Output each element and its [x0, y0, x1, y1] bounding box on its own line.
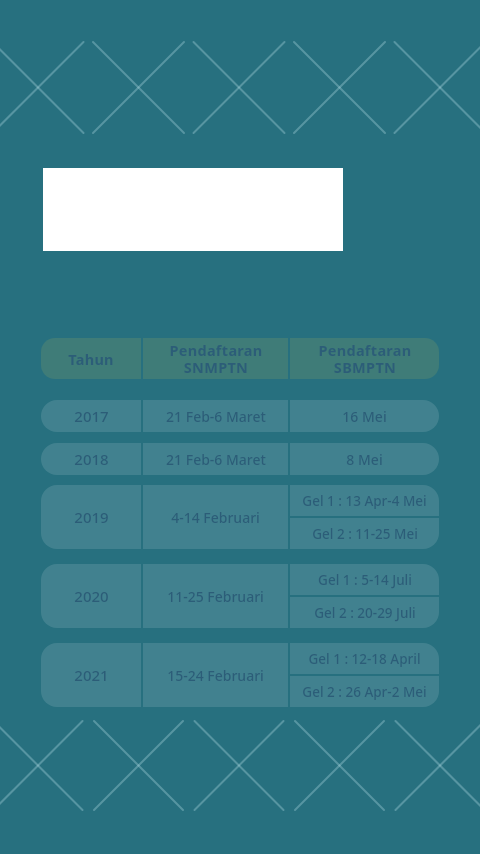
staticText: Gel 2 : 11-25 Mei	[312, 525, 418, 543]
button[interactable]: 2021	[41, 643, 439, 707]
staticText: 2019	[74, 507, 109, 527]
button[interactable]: Tahun	[41, 338, 141, 379]
staticText: 16 Mei	[342, 407, 387, 426]
staticText: 2020	[74, 586, 109, 606]
staticText: 2021	[74, 665, 109, 685]
button[interactable]: Pendaftaran SBMPTN	[290, 338, 439, 379]
staticText: Gel 1 : 13 Apr-4 Mei	[302, 492, 427, 510]
button[interactable]: 2019	[41, 485, 439, 549]
staticText: 8 Mei	[346, 450, 383, 469]
staticText: 4-14 Februari	[171, 508, 260, 527]
button[interactable]: Pendaftaran SNMPTN	[143, 338, 288, 379]
staticText: 11-25 Februari	[167, 587, 264, 606]
staticText: Pendaftaran SNMPTN	[169, 340, 263, 377]
staticText: Gel 1 : 12-18 April	[308, 650, 421, 668]
staticText: 2017	[74, 406, 109, 426]
staticText: 21 Feb-6 Maret	[166, 407, 266, 426]
staticText: Tahun	[68, 349, 114, 369]
staticText: Gel 1 : 5-14 Juli	[318, 571, 412, 589]
staticText: 2018	[74, 449, 109, 469]
button[interactable]: 2020	[41, 564, 439, 628]
button[interactable]: 2018	[41, 443, 439, 475]
button[interactable]: 2017	[41, 400, 439, 432]
staticText: 21 Feb-6 Maret	[166, 450, 266, 469]
staticText: Gel 2 : 26 Apr-2 Mei	[302, 683, 427, 701]
staticText: 15-24 Februari	[167, 666, 264, 685]
staticText: Gel 2 : 20-29 Juli	[314, 604, 416, 622]
staticText: Pendaftaran SBMPTN	[318, 340, 412, 377]
